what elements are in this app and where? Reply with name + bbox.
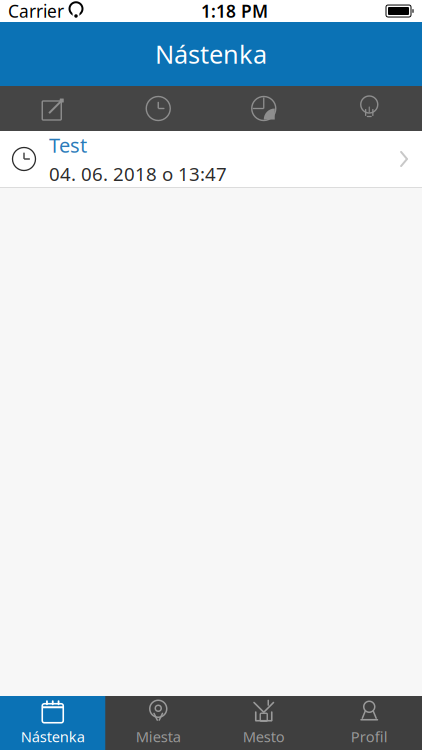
button[interactable]: Nástenka [0,696,105,750]
staticText: Test [49,132,87,158]
staticText: Mesto [243,727,285,746]
staticText: Profil [351,727,388,746]
button[interactable]: Compose [0,86,105,131]
button[interactable]: Tips [316,86,422,131]
staticText: Carrier [8,0,64,22]
button[interactable]: Test [0,131,422,187]
button[interactable]: Miesta [105,696,211,750]
staticText: 04. 06. 2018 o 13:47 [49,161,227,186]
button[interactable]: Statistics [211,86,316,131]
button[interactable]: Profil [316,696,422,750]
staticText: Miesta [136,727,181,746]
staticText: 1:18 PM [201,0,268,22]
staticText: Nástenka [155,37,267,71]
staticText: Nástenka [21,727,85,746]
button[interactable]: Recent [105,86,211,131]
button[interactable]: Mesto [211,696,316,750]
